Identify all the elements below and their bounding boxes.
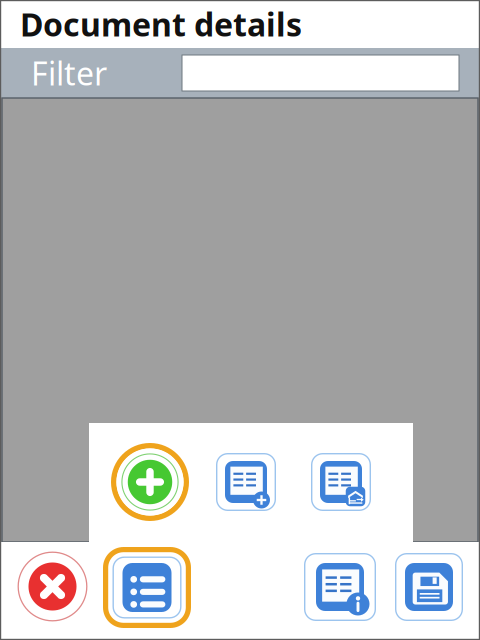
staticText: Filter [31,52,107,94]
button[interactable]: New document [216,453,276,511]
button[interactable]: Add [111,443,189,521]
button[interactable]: Save [395,553,463,621]
button[interactable]: Document to warehouse [311,453,371,511]
button[interactable]: List view [103,547,191,628]
button[interactable]: Cancel [17,551,87,621]
staticText: Document details [20,3,302,45]
button[interactable]: Document info [304,553,376,621]
button[interactable]: Filter text field [182,55,459,91]
